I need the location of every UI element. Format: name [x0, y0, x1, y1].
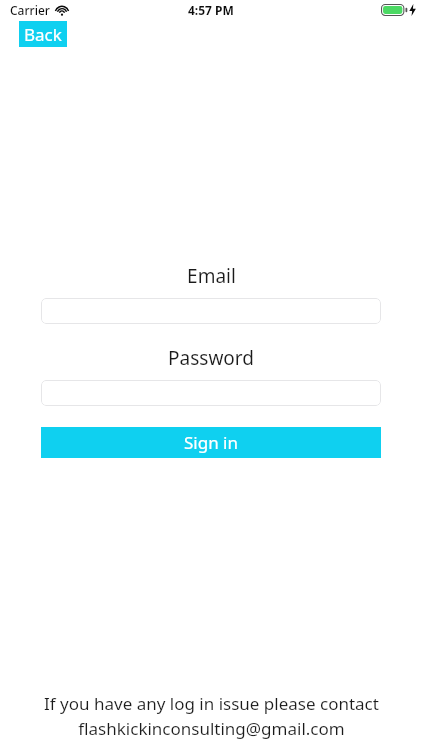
staticText: Sign in — [184, 431, 238, 454]
staticText: 4:57 PM — [188, 2, 234, 18]
button[interactable]: Back — [19, 21, 67, 47]
staticText: Email — [187, 263, 236, 289]
staticText: If you have any log in issue please cont… — [44, 692, 379, 715]
button[interactable] — [41, 298, 381, 324]
staticText: flashkickinconsulting@gmail.com — [78, 717, 345, 740]
staticText: Carrier — [10, 2, 50, 18]
staticText: Password — [168, 345, 254, 371]
button[interactable] — [41, 380, 381, 406]
staticText: Back — [24, 23, 62, 46]
button[interactable]: Sign in — [41, 427, 381, 458]
